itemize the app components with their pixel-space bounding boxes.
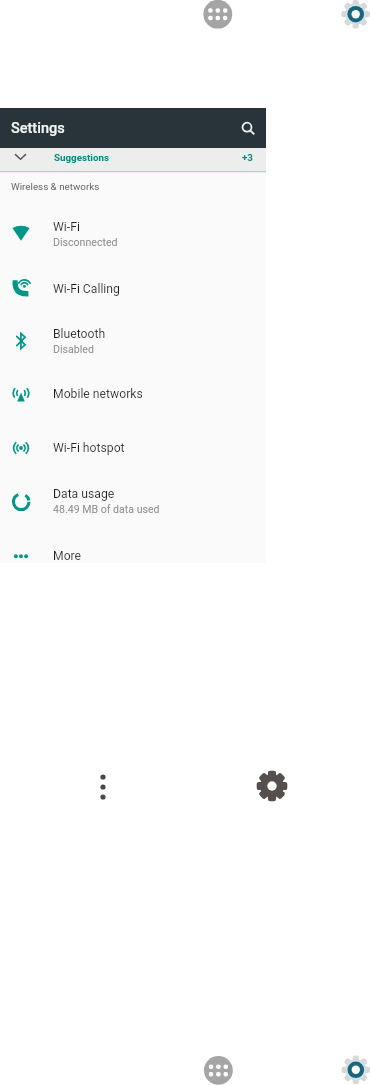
staticText: Data usage <box>53 487 115 501</box>
button[interactable] <box>203 0 232 29</box>
button[interactable]: Data usage <box>0 475 266 527</box>
button[interactable]: More <box>0 530 266 582</box>
button[interactable] <box>204 1056 233 1085</box>
button[interactable] <box>341 0 370 29</box>
staticText: More <box>53 549 82 563</box>
button[interactable] <box>90 772 116 802</box>
button[interactable]: Settings <box>0 108 266 148</box>
button[interactable]: Mobile networks <box>0 368 266 420</box>
staticText: Disconnected <box>53 236 118 248</box>
staticText: Mobile networks <box>53 387 143 401</box>
button[interactable]: Wi-Fi hotspot <box>0 422 266 474</box>
staticText: Wi-Fi Calling <box>53 282 120 296</box>
staticText: Bluetooth <box>53 327 106 341</box>
button[interactable] <box>341 1055 370 1084</box>
staticText: Settings <box>11 120 65 137</box>
button[interactable]: Wi-Fi Calling <box>0 263 266 315</box>
staticText: Wi-Fi hotspot <box>53 441 125 455</box>
staticText: Disabled <box>53 343 94 355</box>
staticText: 48.49 MB of data used <box>53 503 160 515</box>
button[interactable]: Suggestions <box>0 148 266 173</box>
staticText: +3 <box>242 152 253 163</box>
button[interactable]: Wi-Fi <box>0 208 266 260</box>
button[interactable] <box>257 771 287 801</box>
staticText: Suggestions <box>54 152 110 163</box>
staticText: Wireless & networks <box>11 181 100 192</box>
staticText: Wi-Fi <box>53 220 80 234</box>
button[interactable]: Bluetooth <box>0 315 266 367</box>
